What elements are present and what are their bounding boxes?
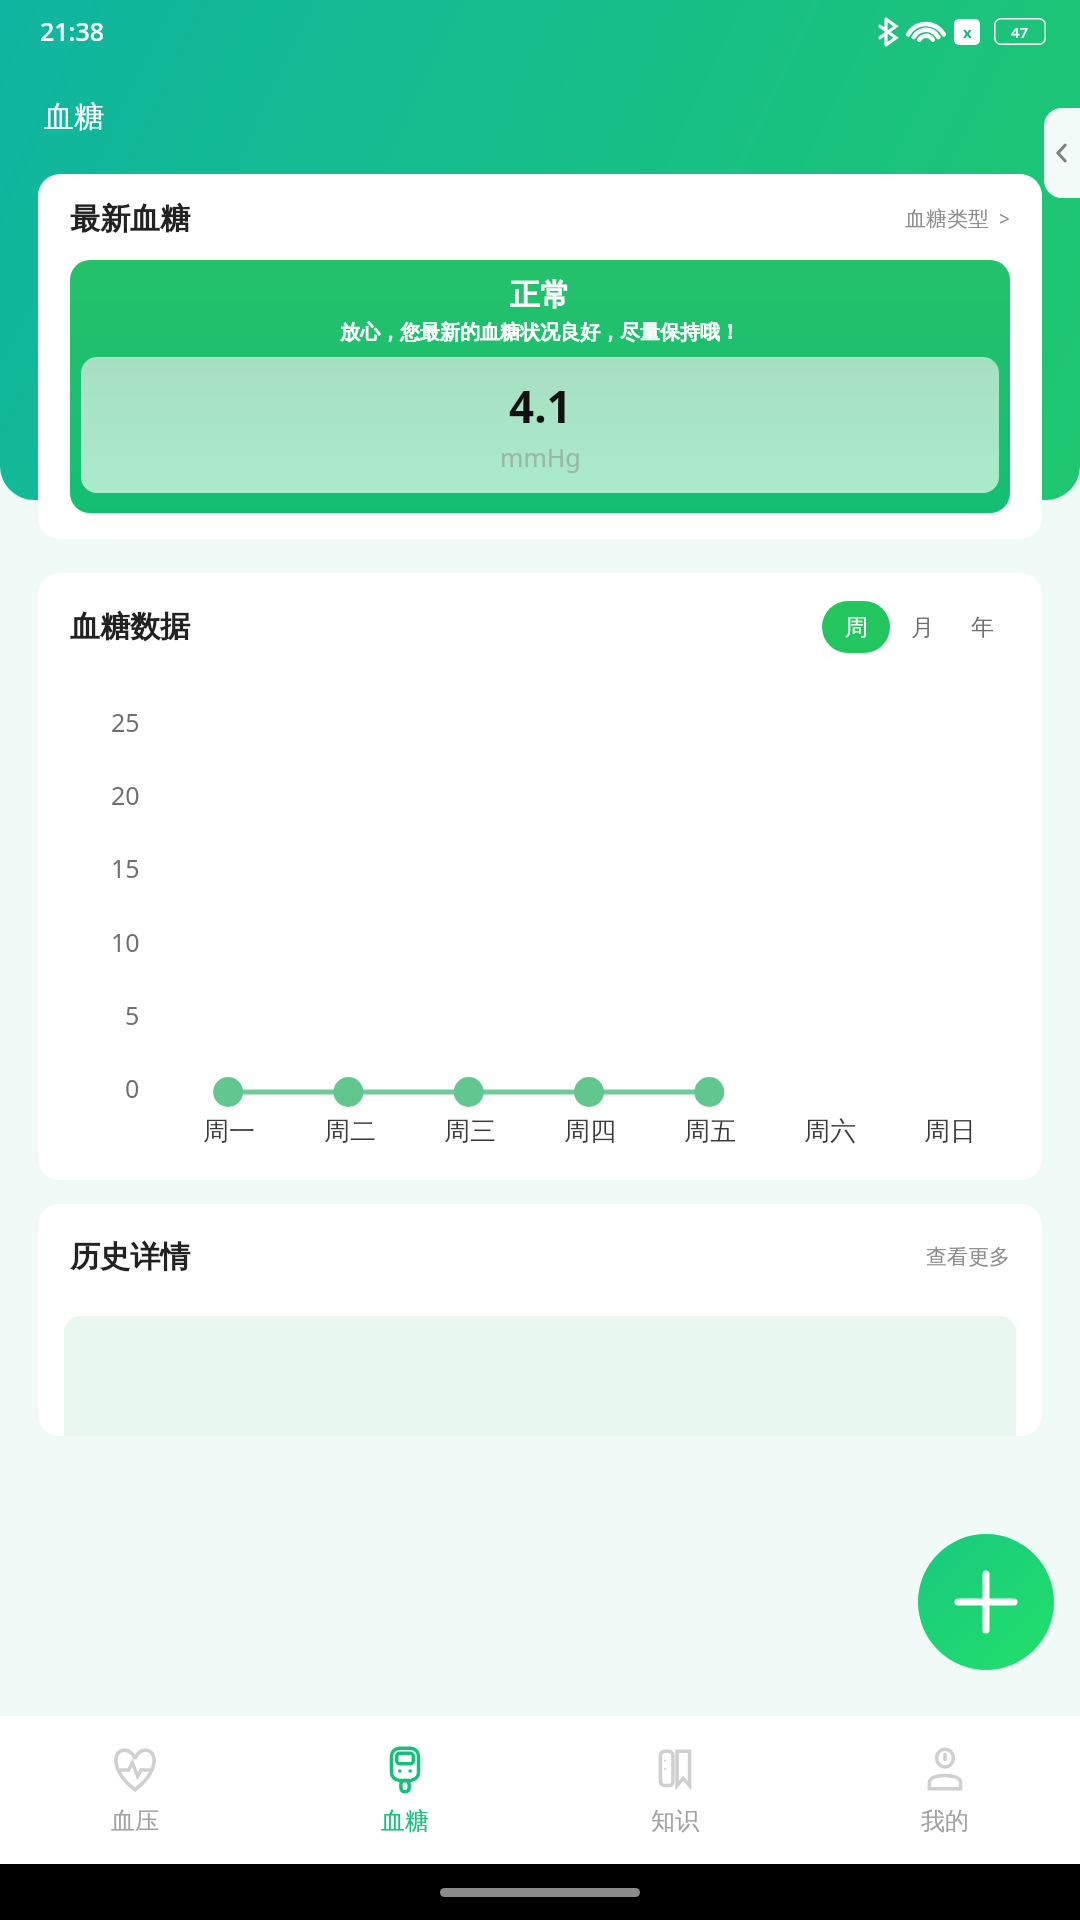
staticText: 周: [845, 613, 868, 642]
staticText: 血糖类型: [905, 206, 989, 232]
button[interactable]: 年: [954, 613, 1010, 642]
staticText: 月: [911, 613, 934, 642]
staticText: 正常: [510, 276, 570, 314]
button[interactable]: 展开: [1044, 108, 1080, 198]
staticText: mmHg: [500, 440, 581, 474]
button[interactable]: 血糖类型: [905, 206, 1010, 232]
button[interactable]: 血压: [0, 1716, 270, 1864]
staticText: 20: [111, 778, 140, 812]
staticText: 血压: [111, 1806, 159, 1836]
staticText: 血糖: [381, 1806, 429, 1836]
staticText: 查看更多: [926, 1244, 1010, 1270]
staticText: 周一: [203, 1115, 255, 1148]
staticText: 47: [1011, 22, 1029, 42]
staticText: 历史详情: [70, 1238, 190, 1276]
staticText: 周日: [924, 1115, 976, 1148]
staticText: 5: [125, 998, 140, 1032]
staticText: x: [963, 22, 972, 42]
button[interactable]: 周: [822, 601, 890, 653]
staticText: 我的: [921, 1806, 969, 1836]
staticText: 最新血糖: [70, 200, 190, 238]
button[interactable]: 正常: [70, 260, 1010, 513]
staticText: 0: [125, 1071, 140, 1105]
button[interactable]: 血糖: [270, 1716, 540, 1864]
staticText: 放心，您最新的血糖状况良好，尽量保持哦！: [340, 320, 740, 345]
staticText: 周三: [444, 1115, 496, 1148]
staticText: 血糖数据: [70, 608, 190, 646]
button[interactable]: 知识: [540, 1716, 810, 1864]
staticText: 周五: [684, 1115, 736, 1148]
staticText: >: [999, 206, 1010, 232]
staticText: 知识: [651, 1806, 699, 1836]
staticText: 周二: [324, 1115, 376, 1148]
button[interactable]: 月: [890, 613, 954, 642]
staticText: 25: [111, 705, 140, 739]
staticText: 10: [111, 925, 140, 959]
button[interactable]: 我的: [810, 1716, 1080, 1864]
button[interactable]: 查看更多: [926, 1244, 1010, 1270]
staticText: 21:38: [40, 14, 105, 48]
staticText: 周四: [564, 1115, 616, 1148]
staticText: 年: [971, 613, 994, 642]
staticText: 血糖: [44, 98, 104, 136]
staticText: 周六: [804, 1115, 856, 1148]
staticText: 15: [111, 851, 140, 885]
staticText: 4.1: [509, 376, 572, 436]
button[interactable]: 添加记录: [918, 1534, 1054, 1670]
